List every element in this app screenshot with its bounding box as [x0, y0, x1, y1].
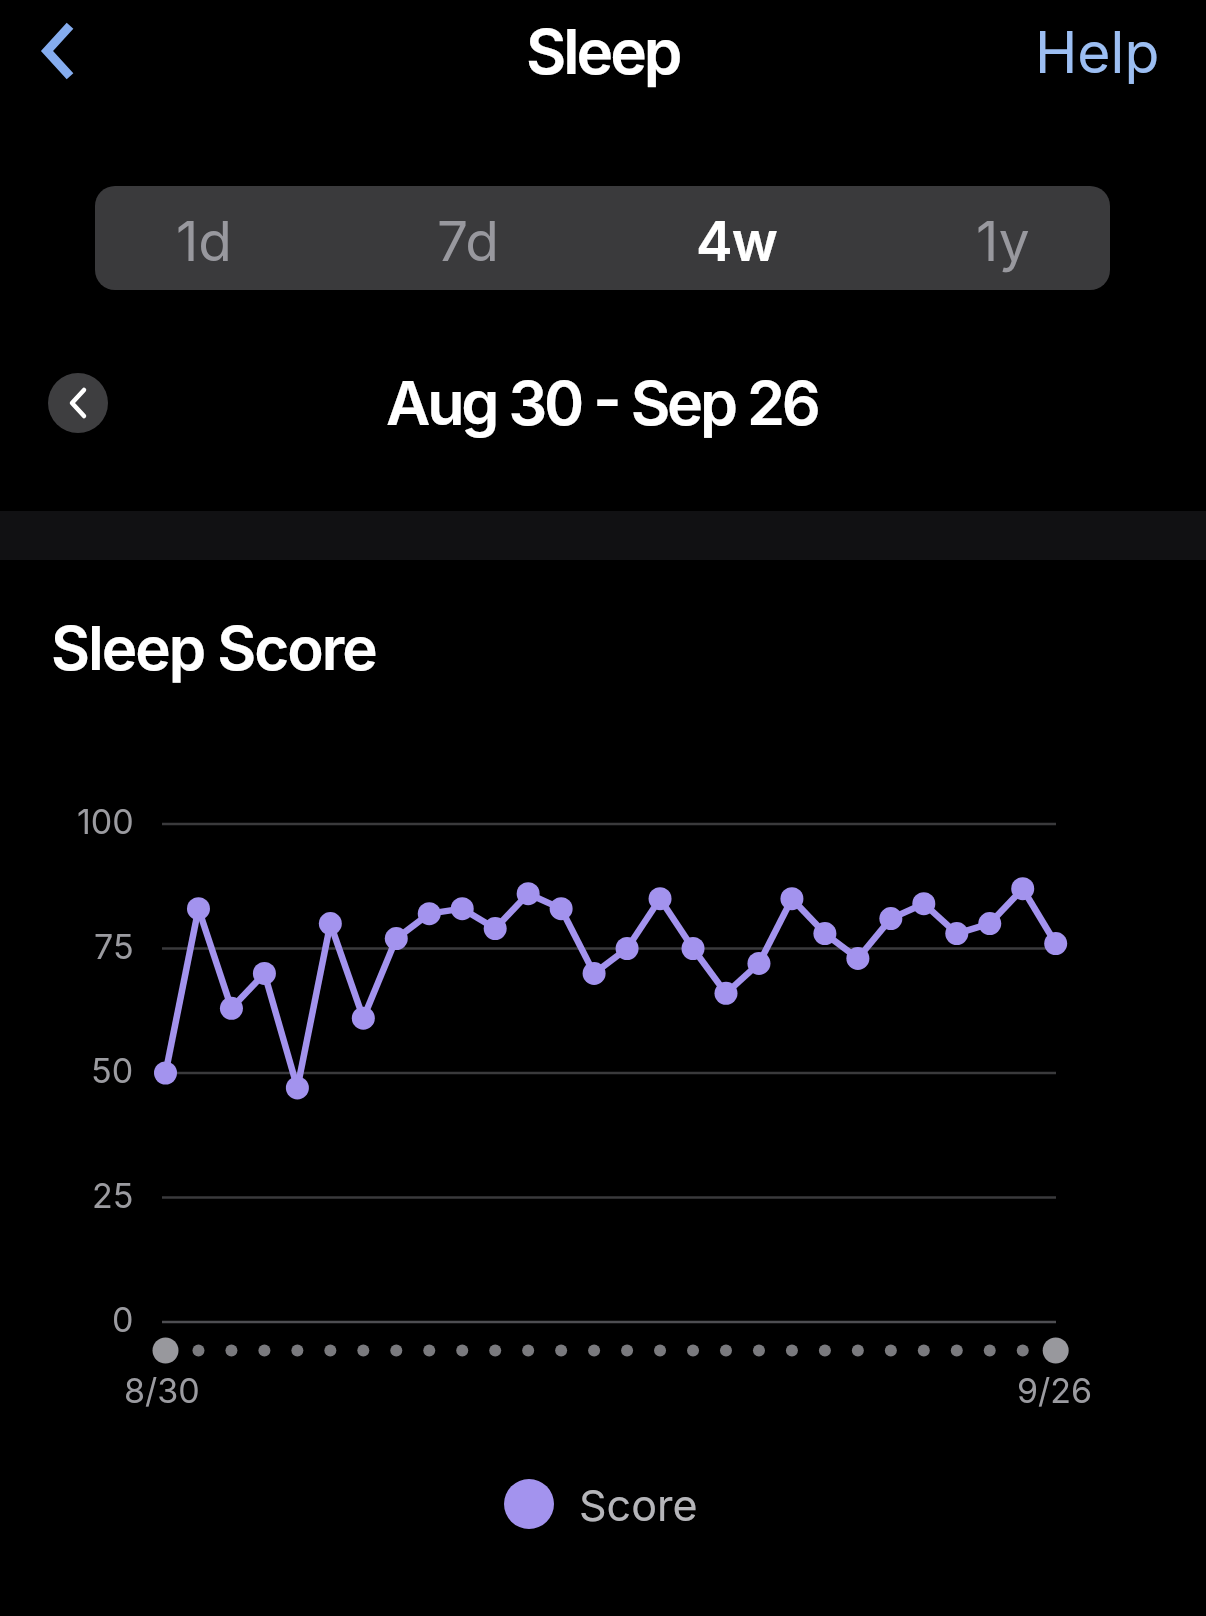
staticText: Aug 30 - Sep 26 [386, 366, 818, 440]
button[interactable]: Help [1000, 12, 1160, 92]
button[interactable] [348, 186, 602, 290]
staticText: 0 [112, 1299, 134, 1339]
button[interactable] [95, 186, 348, 290]
staticText: 1y [976, 208, 1030, 275]
button[interactable] [602, 186, 856, 290]
staticText: 7d [437, 208, 500, 275]
button[interactable] [48, 373, 108, 433]
staticText: 75 [94, 926, 134, 966]
staticText: 1d [176, 208, 233, 275]
staticText: Score [579, 1479, 698, 1529]
staticText: 8/30 [124, 1370, 200, 1410]
button[interactable] [22, 12, 92, 90]
staticText: Help [1035, 18, 1160, 87]
staticText: Sleep [526, 14, 680, 89]
staticText: 50 [91, 1050, 134, 1090]
staticText: Sleep Score [51, 612, 376, 685]
staticText: 100 [77, 801, 134, 841]
button[interactable] [856, 186, 1110, 290]
staticText: 25 [92, 1175, 134, 1215]
staticText: 9/26 [1017, 1370, 1093, 1410]
staticText: 4w [696, 208, 777, 275]
